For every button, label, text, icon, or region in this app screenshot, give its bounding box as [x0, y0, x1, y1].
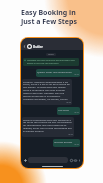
button[interactable]: Attach	[23, 158, 27, 162]
staticText: Quiero hacer una reservacion	[37, 70, 72, 73]
staticText: Today	[48, 53, 54, 56]
staticText: Messages and calls are end-to-end encryp…	[27, 59, 78, 65]
staticText: 10:04	[74, 111, 79, 114]
staticText: Las 20:30	[58, 108, 69, 111]
button[interactable]: Voice message	[77, 158, 81, 162]
staticText: Easy Booking in Just a Few Steps	[21, 8, 77, 26]
other: Back	[23, 45, 26, 48]
button[interactable]: Quiero hacer una reservacion	[37, 70, 79, 76]
staticText: 10:02	[74, 73, 79, 76]
button[interactable]: Messages and calls are end-to-end encryp…	[24, 59, 78, 65]
staticText: Butler	[33, 44, 43, 48]
button[interactable]: Back	[23, 42, 81, 50]
staticText: 10:05	[74, 143, 79, 146]
button[interactable]: Emoji	[69, 158, 73, 162]
button[interactable]: Perfecto. Tenemos disponibilidad a las 2…	[23, 80, 71, 104]
staticText: Reserva confirmada para dos personas a l…	[23, 118, 73, 133]
staticText: 10:03	[66, 101, 71, 104]
staticText: 10:04	[68, 133, 73, 136]
button[interactable]: Camera	[73, 158, 77, 162]
button[interactable]: Las 20:30	[58, 108, 79, 114]
button[interactable]: Muchas gracias	[54, 140, 79, 146]
staticText: Perfecto. Tenemos disponibilidad a las 2…	[23, 80, 71, 101]
staticText: Muchas gracias	[54, 140, 73, 143]
button[interactable]: Reserva confirmada para dos personas a l…	[23, 118, 73, 136]
